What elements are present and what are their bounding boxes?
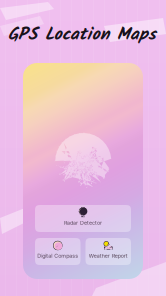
button[interactable]: Digital Compass	[35, 238, 80, 265]
staticText: GPS Location Maps	[8, 21, 156, 49]
button[interactable]: Radar Detector	[35, 205, 131, 232]
staticText: Digital Compass	[37, 252, 78, 259]
staticText: Radar Detector	[64, 219, 102, 226]
staticText: Weather Report	[89, 252, 128, 259]
button[interactable]: Weather Report	[85, 238, 131, 265]
